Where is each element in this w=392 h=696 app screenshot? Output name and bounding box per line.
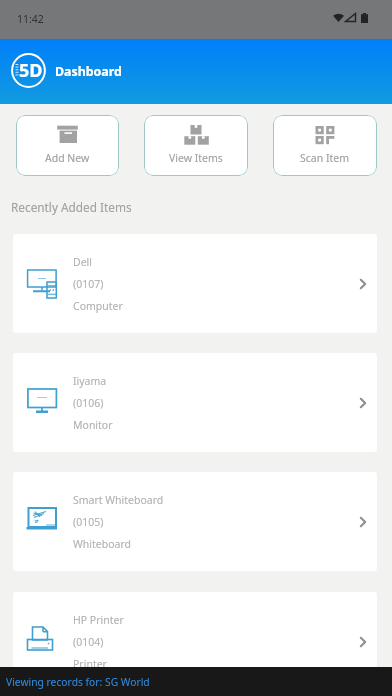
staticText: Dell	[73, 255, 93, 269]
staticText: Iiyama	[73, 374, 107, 388]
staticText: Computer	[73, 299, 123, 313]
button[interactable]: Iiyama (0106) Monitor	[13, 353, 377, 452]
button[interactable]: Open HP Printer details	[350, 631, 372, 653]
button[interactable]: Scan Item	[273, 115, 377, 176]
staticText: (0107)	[73, 277, 104, 291]
staticText: (0104)	[73, 635, 104, 649]
button[interactable]: Dell (0107) Computer	[13, 234, 377, 333]
button[interactable]: HP Printer (0104) Printer	[13, 592, 377, 691]
staticText: HP Printer	[73, 613, 124, 627]
button[interactable]: View Items	[144, 115, 248, 176]
staticText: Viewing records for: SG World	[6, 675, 150, 689]
staticText: 11:42	[17, 12, 44, 26]
staticText: 5D	[19, 58, 43, 83]
button[interactable]: Smart Whiteboard (0105) Whiteboard	[13, 472, 377, 571]
staticText: Scan Item	[300, 151, 350, 165]
staticText: Add New	[45, 151, 90, 165]
staticText: (0106)	[73, 396, 104, 410]
staticText: Smart Whiteboard	[73, 493, 164, 507]
staticText: (0105)	[73, 515, 104, 529]
staticText: Monitor	[73, 418, 113, 432]
staticText: Dashboard	[55, 63, 122, 80]
staticText: Whiteboard	[73, 537, 131, 551]
staticText: View Items	[169, 151, 223, 165]
button[interactable]: Open Dell details	[350, 273, 372, 295]
staticText: Printer	[73, 657, 107, 671]
staticText: Recently Added Items	[11, 199, 132, 215]
button[interactable]: Open Smart Whiteboard details	[350, 511, 372, 533]
button[interactable]: Open Iiyama details	[350, 392, 372, 414]
button[interactable]: Add New	[16, 115, 119, 176]
